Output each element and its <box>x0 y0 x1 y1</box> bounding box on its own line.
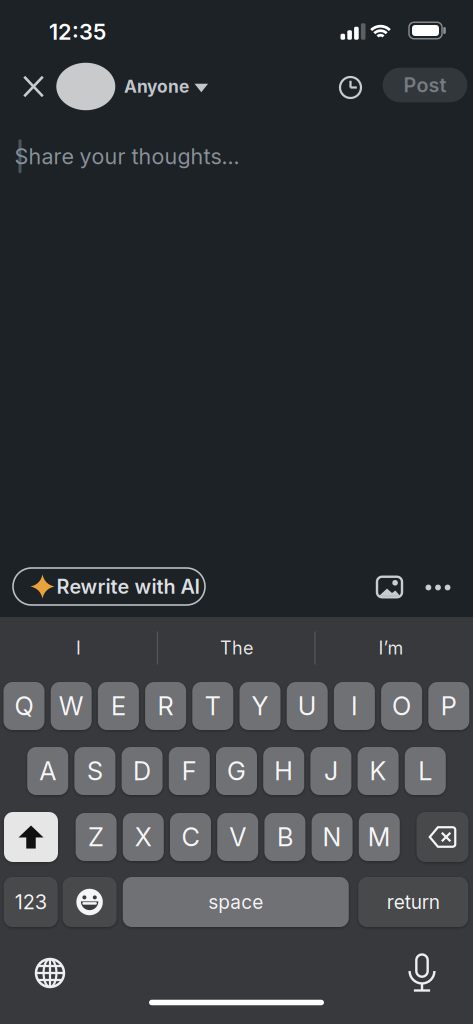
button[interactable]: I’m <box>316 625 466 671</box>
staticText: D <box>133 756 151 786</box>
button[interactable]: Rewrite with AI <box>13 568 205 605</box>
button[interactable]: B <box>264 813 305 861</box>
button[interactable]: The <box>161 625 311 671</box>
staticText: E <box>111 691 126 721</box>
button[interactable]: E <box>98 682 139 730</box>
staticText: I <box>76 637 81 659</box>
button[interactable]: X <box>123 813 164 861</box>
button[interactable]: I <box>3 625 153 671</box>
button[interactable]: Z <box>76 813 117 861</box>
staticText: H <box>274 756 293 786</box>
staticText: M <box>368 822 391 852</box>
staticText: C <box>181 822 199 852</box>
staticText: I’m <box>378 637 403 659</box>
button[interactable]: Anyone <box>54 60 214 112</box>
staticText: 123 <box>15 890 47 914</box>
staticText: return <box>387 890 440 914</box>
staticText: N <box>323 822 342 852</box>
button[interactable]: T <box>192 682 233 730</box>
staticText: A <box>39 756 56 786</box>
staticText: The <box>220 637 253 659</box>
staticText: J <box>324 756 338 786</box>
button[interactable]: V <box>217 813 258 861</box>
staticText: L <box>418 756 432 786</box>
staticText: T <box>205 691 221 721</box>
button[interactable] <box>400 951 444 995</box>
button[interactable]: K <box>358 747 399 795</box>
button[interactable]: return <box>358 877 468 927</box>
staticText: P <box>441 691 457 721</box>
button[interactable] <box>28 951 72 995</box>
staticText: Y <box>251 691 268 721</box>
button[interactable]: Post <box>383 68 467 102</box>
staticText: R <box>158 691 174 721</box>
button[interactable]: W <box>51 682 92 730</box>
staticText: O <box>392 691 411 721</box>
button[interactable]: N <box>312 813 353 861</box>
staticText: G <box>227 756 246 786</box>
button[interactable]: P <box>428 682 469 730</box>
button[interactable]: D <box>122 747 163 795</box>
button[interactable] <box>371 569 407 605</box>
staticText: V <box>229 822 246 852</box>
staticText: K <box>370 756 387 786</box>
button[interactable]: U <box>287 682 328 730</box>
button[interactable]: I <box>334 682 375 730</box>
button[interactable]: S <box>74 747 115 795</box>
button[interactable] <box>416 812 468 862</box>
button[interactable]: space <box>123 877 349 927</box>
button[interactable]: J <box>310 747 351 795</box>
staticText: F <box>182 756 197 786</box>
button[interactable] <box>330 67 370 107</box>
staticText: Anyone <box>124 76 189 97</box>
button[interactable]: C <box>170 813 211 861</box>
button[interactable] <box>420 569 456 605</box>
button[interactable]: R <box>145 682 186 730</box>
button[interactable]: F <box>169 747 210 795</box>
staticText: Rewrite with AI <box>56 574 199 598</box>
button[interactable] <box>4 812 58 862</box>
button[interactable]: H <box>263 747 304 795</box>
staticText: U <box>298 691 317 721</box>
staticText: Q <box>14 691 33 721</box>
staticText: W <box>59 691 84 721</box>
button[interactable]: G <box>216 747 257 795</box>
staticText: Post <box>403 73 446 97</box>
button[interactable]: A <box>27 747 68 795</box>
button[interactable] <box>63 877 117 927</box>
staticText: B <box>277 822 293 852</box>
staticText: X <box>135 822 152 852</box>
button[interactable]: O <box>381 682 422 730</box>
staticText: S <box>87 756 103 786</box>
button[interactable]: M <box>359 813 400 861</box>
button[interactable]: Y <box>239 682 280 730</box>
staticText: 12:35 <box>49 18 106 45</box>
button[interactable]: 123 <box>4 877 58 927</box>
staticText: space <box>208 890 263 914</box>
button[interactable]: Q <box>3 682 44 730</box>
staticText: I <box>351 691 358 721</box>
staticText: Share your thoughts... <box>14 143 239 169</box>
button[interactable] <box>13 66 53 106</box>
staticText: Z <box>88 822 104 852</box>
button[interactable]: L <box>405 747 446 795</box>
